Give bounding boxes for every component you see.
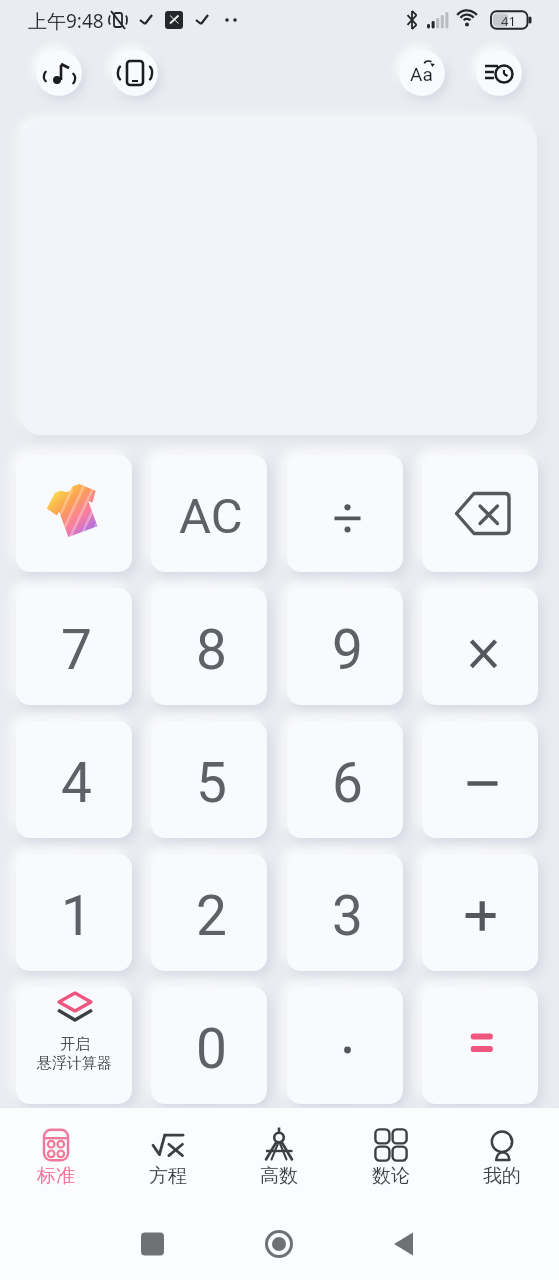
staticText: 7 bbox=[61, 618, 92, 682]
staticText: 5 bbox=[196, 751, 227, 815]
button[interactable] bbox=[112, 50, 158, 96]
button[interactable] bbox=[399, 50, 445, 96]
staticText: 2 bbox=[196, 884, 227, 948]
button[interactable]: 3 bbox=[287, 854, 403, 971]
button[interactable]: 6 bbox=[287, 721, 403, 838]
button[interactable]: 0 bbox=[151, 987, 267, 1104]
staticText: 开启 bbox=[60, 1035, 90, 1054]
staticText: 标准 bbox=[37, 1164, 75, 1188]
button[interactable] bbox=[422, 455, 538, 572]
button[interactable] bbox=[16, 455, 132, 572]
staticText: 方程 bbox=[149, 1164, 187, 1188]
button[interactable] bbox=[36, 50, 82, 96]
button[interactable] bbox=[287, 455, 403, 572]
button[interactable]: 8 bbox=[151, 588, 267, 705]
staticText: AC bbox=[179, 488, 243, 545]
staticText: 上午9:48 bbox=[28, 8, 104, 34]
staticText: 3 bbox=[332, 884, 363, 948]
button[interactable]: 高数 bbox=[234, 1115, 324, 1197]
button[interactable]: 方程 bbox=[123, 1115, 213, 1197]
staticText: 41 bbox=[501, 12, 516, 30]
button[interactable]: 我的 bbox=[457, 1115, 547, 1197]
staticText: 8 bbox=[196, 618, 227, 682]
staticText: 6 bbox=[332, 751, 363, 815]
button[interactable] bbox=[422, 854, 538, 971]
staticText: 悬浮计算器 bbox=[37, 1054, 112, 1073]
button[interactable] bbox=[287, 987, 403, 1104]
staticText: 数论 bbox=[372, 1164, 410, 1188]
button[interactable]: 7 bbox=[16, 588, 132, 705]
button[interactable] bbox=[422, 588, 538, 705]
staticText: 1 bbox=[61, 884, 92, 948]
button[interactable]: 2 bbox=[151, 854, 267, 971]
button[interactable] bbox=[422, 987, 538, 1104]
staticText: 4 bbox=[61, 751, 92, 815]
button[interactable]: 9 bbox=[287, 588, 403, 705]
button[interactable]: 数论 bbox=[346, 1115, 436, 1197]
button[interactable]: 标准 bbox=[11, 1115, 101, 1197]
staticText: 9 bbox=[332, 618, 363, 682]
staticText: 我的 bbox=[483, 1164, 521, 1188]
staticText: 高数 bbox=[260, 1164, 298, 1188]
button[interactable]: 5 bbox=[151, 721, 267, 838]
button[interactable]: 开启 bbox=[16, 987, 132, 1104]
staticText: 0 bbox=[196, 1017, 227, 1081]
staticText: Aa bbox=[410, 63, 433, 85]
button[interactable]: AC bbox=[151, 455, 267, 572]
button[interactable]: 4 bbox=[16, 721, 132, 838]
button[interactable]: 1 bbox=[16, 854, 132, 971]
button[interactable] bbox=[422, 721, 538, 838]
button[interactable] bbox=[476, 50, 522, 96]
